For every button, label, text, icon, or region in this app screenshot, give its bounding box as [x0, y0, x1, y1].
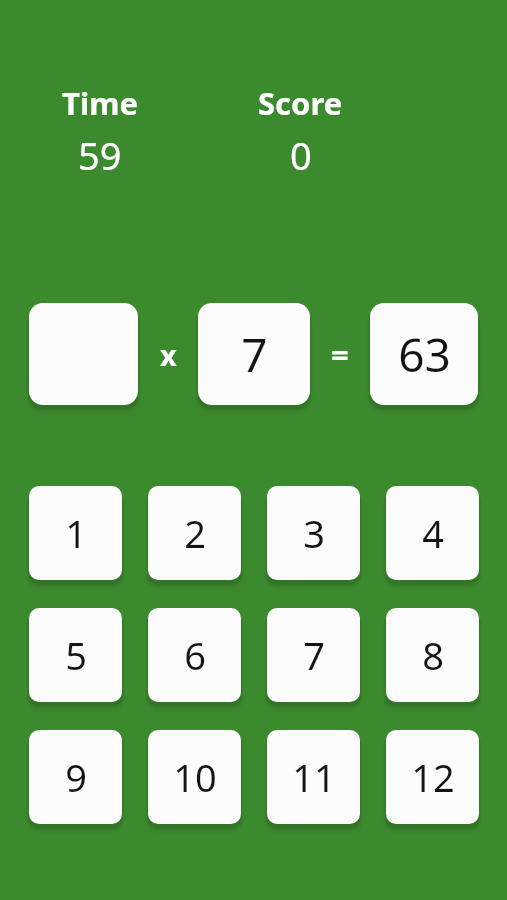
staticText: 63 — [398, 323, 451, 386]
button[interactable]: 8 — [386, 608, 479, 702]
staticText: 7 — [241, 323, 268, 386]
button[interactable]: 9 — [29, 730, 122, 824]
staticText: 4 — [422, 507, 444, 559]
staticText: 0 — [290, 129, 312, 181]
staticText: 11 — [292, 751, 336, 803]
button[interactable]: 4 — [386, 486, 479, 580]
button[interactable]: 7 — [267, 608, 360, 702]
staticText: Time — [62, 82, 138, 124]
button[interactable]: 11 — [267, 730, 360, 824]
staticText: Score — [258, 82, 343, 124]
button[interactable]: 6 — [148, 608, 241, 702]
button[interactable]: 7 — [198, 303, 310, 405]
staticText: 10 — [173, 751, 217, 803]
staticText: 59 — [78, 129, 122, 181]
staticText: x — [160, 335, 177, 374]
button[interactable]: 12 — [386, 730, 479, 824]
staticText: 6 — [184, 629, 206, 681]
staticText: 8 — [422, 629, 444, 681]
staticText: = — [331, 333, 349, 375]
staticText: 2 — [184, 507, 206, 559]
button[interactable]: 3 — [267, 486, 360, 580]
staticText: 5 — [65, 629, 87, 681]
button[interactable]: Missing number, tap a number below — [29, 303, 138, 405]
staticText: 1 — [65, 507, 87, 559]
button[interactable]: 10 — [148, 730, 241, 824]
staticText: 3 — [303, 507, 325, 559]
staticText: 9 — [65, 751, 87, 803]
button[interactable]: 2 — [148, 486, 241, 580]
button[interactable]: 5 — [29, 608, 122, 702]
button[interactable]: 1 — [29, 486, 122, 580]
staticText: 12 — [411, 751, 455, 803]
button[interactable]: 63 — [370, 303, 478, 405]
staticText: 7 — [303, 629, 325, 681]
